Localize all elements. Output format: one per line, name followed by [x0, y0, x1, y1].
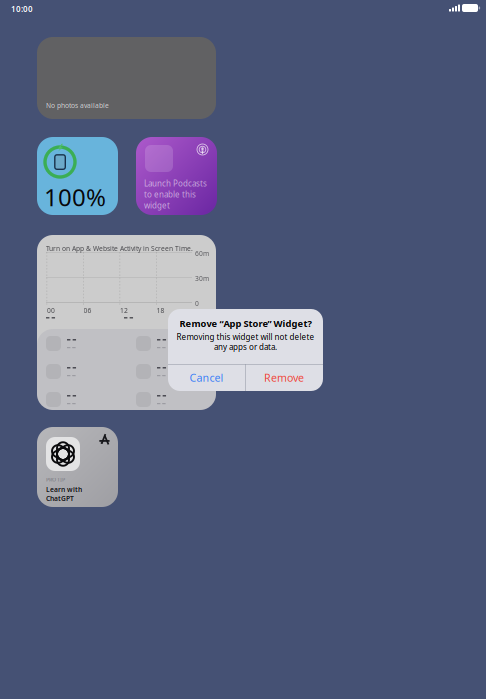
button[interactable]: 100% — [37, 137, 118, 215]
staticText: 60m — [195, 249, 209, 258]
button[interactable]: Launch Podcasts — [136, 137, 217, 215]
button[interactable]: Turn on App & Website Activity in Screen… — [37, 235, 216, 410]
button[interactable]: PRO TIP — [37, 427, 118, 507]
staticText: No photos available — [46, 101, 109, 110]
staticText: 06 — [83, 306, 91, 315]
staticText: Turn on App & Website Activity in Screen… — [46, 244, 193, 253]
staticText: 100% — [44, 181, 106, 213]
staticText: 0 — [195, 299, 199, 308]
staticText: Cancel — [189, 370, 223, 385]
button[interactable]: Remove — [245, 364, 323, 391]
staticText: ChatGPT — [46, 494, 74, 503]
staticText: 18 — [156, 306, 164, 315]
staticText: Removing this widget will not delete — [176, 332, 314, 342]
button[interactable]: Cancel — [168, 364, 245, 391]
staticText: Learn with — [46, 485, 82, 494]
staticText: 10:00 — [11, 3, 33, 14]
staticText: Remove “App Store” Widget? — [179, 317, 311, 330]
staticText: 30m — [195, 274, 209, 283]
staticText: PRO TIP — [46, 476, 65, 483]
staticText: widget — [144, 200, 170, 211]
staticText: any apps or data. — [214, 342, 277, 352]
button[interactable]: No photos available — [37, 37, 216, 119]
staticText: to enable this — [144, 189, 196, 200]
staticText: 00 — [47, 306, 55, 315]
staticText: Launch Podcasts — [144, 178, 207, 189]
staticText: Remove — [264, 370, 304, 385]
staticText: 12 — [120, 306, 128, 315]
